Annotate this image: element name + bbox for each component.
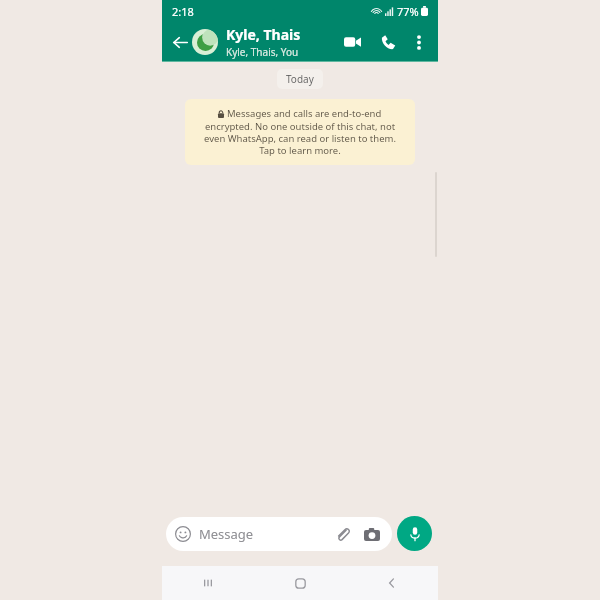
button[interactable]: Home xyxy=(254,566,346,600)
staticText: Messages and calls are end-to-end xyxy=(227,107,382,120)
button[interactable]: Camera xyxy=(361,523,383,545)
button[interactable]: Recents xyxy=(162,566,254,600)
button[interactable]: Back xyxy=(346,566,438,600)
button[interactable]: Today xyxy=(277,69,323,89)
button[interactable]: Group photo xyxy=(192,29,218,55)
staticText: Today xyxy=(286,72,314,86)
button[interactable]: Message xyxy=(166,517,392,551)
button[interactable]: Messages and calls are end-to-end xyxy=(185,99,415,165)
staticText: encrypted. No one outside of this chat, … xyxy=(195,120,405,157)
button[interactable]: More options xyxy=(405,28,433,56)
button[interactable]: Attach xyxy=(331,523,353,545)
staticText: Message xyxy=(199,525,254,543)
button[interactable]: Video call xyxy=(337,27,367,57)
button[interactable]: Back xyxy=(166,28,194,56)
staticText: 77% xyxy=(397,4,419,19)
staticText: Kyle, Thais, You xyxy=(226,45,299,59)
staticText: Kyle, Thais xyxy=(226,25,301,44)
button[interactable]: Kyle, Thais xyxy=(226,25,337,59)
staticText: 2:18 xyxy=(172,4,194,19)
button[interactable]: Record voice message xyxy=(397,516,432,551)
button[interactable]: Voice call xyxy=(373,27,403,57)
